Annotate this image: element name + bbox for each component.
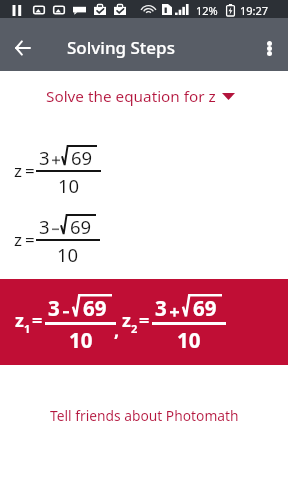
button[interactable]: Solve the equation for z [0,72,288,124]
staticText: 10 [177,326,201,354]
staticText: 3 [39,145,50,170]
staticText: 10 [69,326,93,354]
staticText: Solving Steps [67,36,175,59]
staticText: 69 [70,214,92,239]
staticText: = [139,308,150,333]
staticText: 69 [193,294,217,322]
staticText: = [32,308,43,333]
staticText: 3 [48,294,60,322]
staticText: = [25,159,35,182]
staticText: z [14,159,22,182]
staticText: 19:27 [240,3,269,18]
staticText: Solve the equation for z [46,86,216,107]
button[interactable]: Tell friends about Photomath [0,402,288,428]
staticText: Tell friends about Photomath [50,406,239,425]
staticText: z [15,308,24,333]
staticText: z [14,228,22,251]
staticText: = [25,228,35,251]
staticText: 1 [24,321,31,336]
staticText: 3 [155,294,167,322]
staticText: 2 [131,321,138,336]
staticText: , [114,318,120,343]
button[interactable]: z [0,279,288,365]
staticText: z [122,308,131,333]
staticText: 10 [58,173,80,198]
staticText: 69 [71,145,93,170]
button[interactable]: Back [5,31,39,65]
button[interactable]: More options [252,31,286,65]
staticText: 10 [57,242,79,267]
staticText: 69 [83,294,107,322]
staticText: 3 [39,214,50,239]
staticText: 12% [196,3,218,18]
